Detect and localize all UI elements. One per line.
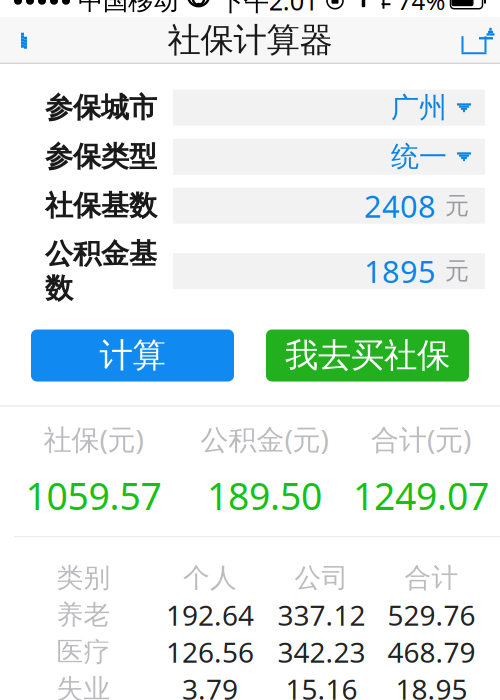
staticText: 元 <box>445 191 469 220</box>
staticText: 下午2:01 <box>219 0 318 17</box>
staticText: 189.50 <box>207 471 322 520</box>
button[interactable]: 参保城市 <box>15 90 485 126</box>
staticText: 2408 <box>364 185 436 226</box>
button[interactable]: 返回 <box>0 17 48 63</box>
staticText: 192.64 <box>166 596 254 633</box>
staticText: 个人 <box>183 561 237 594</box>
staticText: 社保(元) <box>43 420 143 458</box>
staticText: 126.56 <box>166 633 254 670</box>
button[interactable]: 计算 <box>31 329 234 381</box>
staticText: 337.12 <box>277 596 365 633</box>
button[interactable]: 参保类型 <box>15 139 485 175</box>
staticText: 1059.57 <box>25 471 161 520</box>
button[interactable]: 社保基数 <box>15 188 485 224</box>
staticText: 统一 <box>391 139 447 174</box>
staticText: 合计(元) <box>371 420 471 458</box>
staticText: 类别 <box>56 561 110 594</box>
staticText: 社保基数 <box>45 188 157 223</box>
staticText: 医疗 <box>56 635 110 668</box>
staticText: 74% <box>397 0 445 17</box>
staticText: 3.79 <box>182 670 238 700</box>
staticText: 养老 <box>56 598 110 631</box>
staticText: 公积金基数 <box>45 237 157 305</box>
button[interactable]: 我去买社保 <box>266 329 469 381</box>
staticText: 中国移动 <box>78 0 178 16</box>
staticText: 广州 <box>391 90 447 125</box>
staticText: 1895 <box>364 251 436 291</box>
staticText: 342.23 <box>277 633 365 670</box>
staticText: 468.79 <box>387 633 475 670</box>
staticText: 元 <box>445 256 469 286</box>
staticText: 我去买社保 <box>285 335 450 376</box>
staticText: 15.16 <box>285 670 357 700</box>
button[interactable]: 分享 <box>448 17 500 63</box>
staticText: 参保城市 <box>45 90 157 125</box>
staticText: 计算 <box>99 335 165 376</box>
staticText: 失业 <box>56 672 110 700</box>
staticText: 公积金(元) <box>200 420 328 458</box>
staticText: 公司 <box>294 561 348 594</box>
staticText: 社保计算器 <box>167 20 332 61</box>
staticText: 18.95 <box>395 670 467 700</box>
staticText: 529.76 <box>387 596 475 633</box>
staticText: 1249.07 <box>353 471 489 520</box>
button[interactable]: 公积金基数 <box>15 237 485 305</box>
staticText: 参保类型 <box>45 139 157 174</box>
staticText: 合计 <box>404 561 458 594</box>
